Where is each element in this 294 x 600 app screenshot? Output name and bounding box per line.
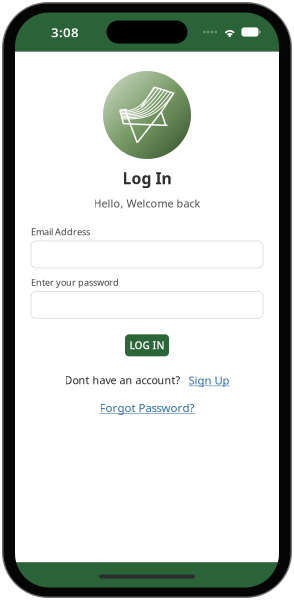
staticText: Log In [122,167,171,189]
staticText: Forgot Password? [99,400,194,415]
staticText: Sign Up [188,372,229,388]
button[interactable]: Forgot Password? [99,400,194,415]
staticText: Hello, Welcome back [93,196,200,211]
staticText: Dont have an account? [64,373,180,387]
staticText: 3:08 [51,23,79,41]
staticText: Enter your password [31,276,119,288]
staticText: Email Address [31,226,90,238]
staticText: LOG IN [129,338,164,352]
button[interactable]: Sign Up [188,372,229,388]
button[interactable]: LOG IN [125,334,169,356]
